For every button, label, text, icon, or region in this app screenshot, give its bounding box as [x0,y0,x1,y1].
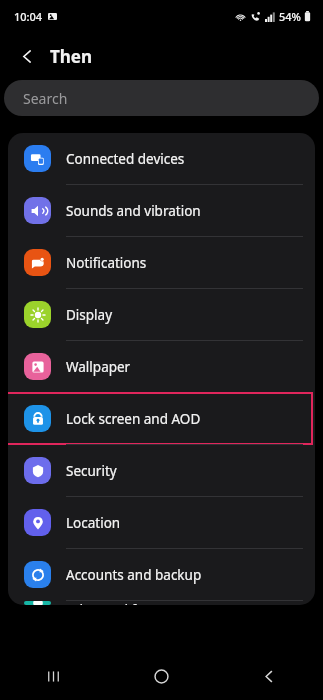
staticText: Accounts and backup [66,566,202,584]
button[interactable]: Search [4,80,319,116]
button[interactable]: Sounds and vibration [8,185,315,236]
staticText: Security [66,462,117,480]
staticText: 54% [279,9,301,24]
button[interactable]: Accounts and backup [8,549,315,600]
button[interactable]: Lock screen and AOD [8,393,315,444]
staticText: Notifications [66,254,147,272]
button[interactable]: Location [8,497,315,548]
staticText: Search [23,89,68,108]
staticText: Connected devices [66,150,185,168]
button[interactable]: Wallpaper [8,341,315,392]
staticText: 10:04 [14,9,43,24]
button[interactable]: Notifications [8,237,315,288]
button[interactable]: Recent apps [0,652,107,700]
staticText: Sounds and vibration [66,202,201,220]
staticText: Lock screen and AOD [66,410,201,428]
button[interactable]: Advanced features [8,601,315,605]
staticText: Location [66,514,121,532]
button[interactable]: Security [8,445,315,496]
button[interactable]: Connected devices [8,133,315,184]
button[interactable]: Back [10,39,44,73]
button[interactable]: Back [215,652,323,700]
staticText: Display [66,306,113,324]
staticText: Then [50,45,93,68]
button[interactable]: Display [8,289,315,340]
staticText: Wallpaper [66,358,131,376]
staticText: Advanced features [66,601,185,605]
button[interactable]: Home [107,652,215,700]
